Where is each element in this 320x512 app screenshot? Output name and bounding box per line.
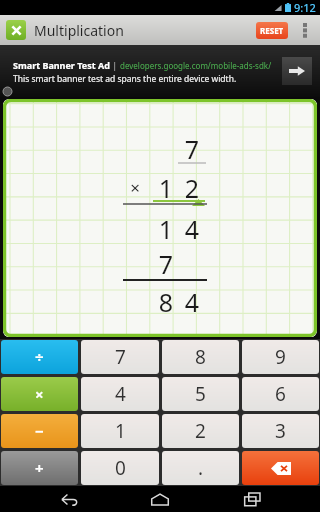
staticText: × bbox=[126, 176, 144, 199]
button[interactable]: 6 bbox=[242, 377, 319, 411]
staticText: 8 bbox=[195, 344, 206, 370]
button[interactable]: Smart Banner Test Ad bbox=[0, 45, 320, 97]
staticText: 3 bbox=[275, 418, 286, 444]
button[interactable]: Recent apps bbox=[229, 486, 275, 512]
staticText: 4 bbox=[180, 285, 204, 315]
button[interactable]: 5 bbox=[162, 377, 239, 411]
staticText: 5 bbox=[195, 381, 206, 407]
button[interactable]: Back bbox=[46, 486, 92, 512]
staticText: . bbox=[198, 455, 204, 481]
button[interactable]: × bbox=[1, 377, 78, 411]
button[interactable]: RESET bbox=[256, 22, 288, 39]
staticText: 0 bbox=[115, 455, 126, 481]
button[interactable]: 1 bbox=[81, 414, 159, 448]
staticText: 4 bbox=[115, 381, 126, 407]
staticText: Smart Banner Test Ad bbox=[13, 59, 110, 71]
staticText: − bbox=[35, 421, 44, 441]
button[interactable]: 3 bbox=[242, 414, 319, 448]
staticText: 6 bbox=[275, 381, 286, 407]
button[interactable]: . bbox=[162, 451, 239, 485]
button[interactable]: More options bbox=[296, 17, 314, 43]
staticText: 4 bbox=[180, 212, 204, 242]
button[interactable]: Open ad bbox=[282, 57, 312, 85]
staticText: 9:12 bbox=[294, 0, 316, 15]
staticText: ÷ bbox=[35, 347, 44, 367]
staticText: 7 bbox=[115, 344, 126, 370]
staticText: × bbox=[35, 384, 44, 404]
button[interactable]: Home bbox=[137, 486, 183, 512]
staticText: 1 bbox=[115, 418, 126, 444]
staticText: + bbox=[35, 458, 44, 478]
staticText: Multiplication bbox=[34, 21, 124, 40]
button[interactable]: 7 bbox=[81, 340, 159, 374]
staticText: 7 bbox=[180, 132, 204, 162]
staticText: 2 bbox=[195, 418, 206, 444]
staticText: 7 bbox=[154, 247, 178, 277]
staticText: This smart banner test ad spans the enti… bbox=[13, 73, 237, 85]
staticText: RESET bbox=[260, 25, 284, 36]
button[interactable]: − bbox=[1, 414, 78, 448]
staticText: 1 bbox=[154, 212, 178, 242]
staticText: developers.google.com/mobile-ads-sdk/ bbox=[120, 60, 272, 71]
button[interactable]: 0 bbox=[81, 451, 159, 485]
staticText: | bbox=[110, 59, 120, 71]
staticText: 9 bbox=[275, 344, 286, 370]
staticText: 2 bbox=[180, 171, 204, 201]
staticText: 1 bbox=[154, 171, 178, 201]
staticText: 8 bbox=[154, 285, 178, 315]
button[interactable]: 2 bbox=[162, 414, 239, 448]
button[interactable]: 4 bbox=[81, 377, 159, 411]
button[interactable]: + bbox=[1, 451, 78, 485]
button[interactable]: 9 bbox=[242, 340, 319, 374]
button[interactable]: Backspace bbox=[242, 451, 319, 485]
button[interactable]: 8 bbox=[162, 340, 239, 374]
button[interactable]: ÷ bbox=[1, 340, 78, 374]
